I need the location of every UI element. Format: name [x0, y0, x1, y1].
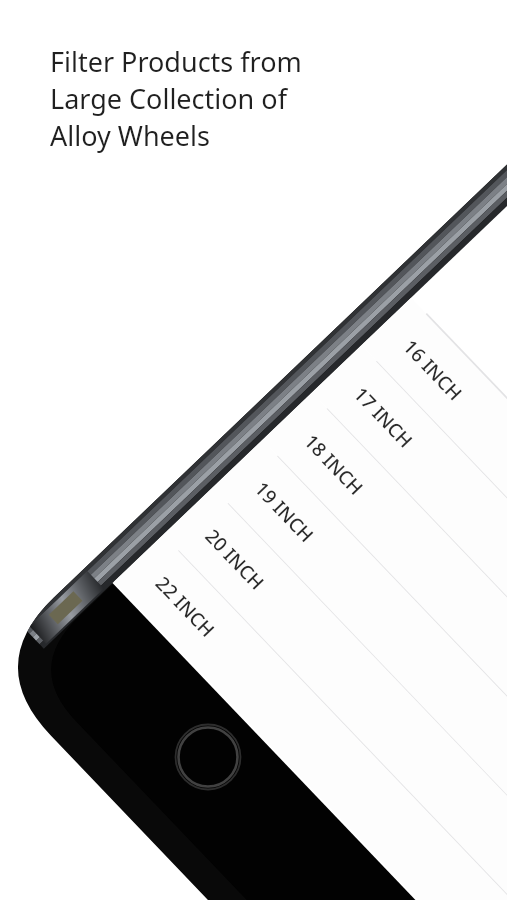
- staticText: Alloy Wheels: [50, 117, 210, 154]
- button[interactable]: Phone showing alloy wheel size filter li…: [0, 0, 507, 900]
- staticText: Large Collection of: [50, 80, 287, 117]
- staticText: Filter Products from: [50, 43, 302, 80]
